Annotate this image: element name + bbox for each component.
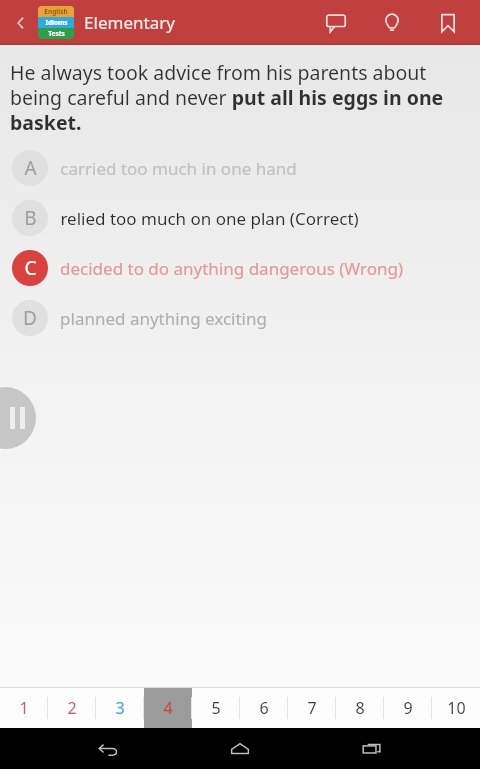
staticText: planned anything exciting — [60, 307, 267, 330]
staticText: B — [24, 205, 37, 231]
staticText: 7 — [307, 697, 317, 719]
button[interactable]: Pause — [0, 387, 36, 449]
staticText: D — [23, 305, 37, 331]
button[interactable]: 5 — [192, 688, 240, 728]
button[interactable]: 10 — [432, 688, 480, 728]
button[interactable]: Comments — [316, 3, 356, 43]
button[interactable]: A — [0, 143, 480, 193]
staticText: carried too much in one hand — [60, 157, 297, 180]
staticText: A — [24, 155, 37, 181]
button[interactable]: C — [0, 243, 480, 293]
staticText: 6 — [259, 697, 269, 719]
staticText: 5 — [211, 697, 221, 719]
staticText: relied too much on one plan (Correct) — [60, 207, 359, 230]
staticText: 3 — [115, 697, 125, 719]
staticText: He always took advice from his parents a… — [10, 59, 466, 135]
button[interactable]: Hint — [372, 3, 412, 43]
staticText: 10 — [447, 697, 466, 719]
staticText: Tests — [48, 29, 65, 38]
button[interactable]: 9 — [384, 688, 432, 728]
button[interactable]: 3 — [96, 688, 144, 728]
button[interactable]: D — [0, 293, 480, 343]
button[interactable]: Back — [4, 6, 38, 40]
button[interactable]: Bookmark — [428, 3, 468, 43]
button[interactable]: 6 — [240, 688, 288, 728]
button[interactable]: Recents — [348, 728, 396, 769]
button[interactable]: 4 — [144, 688, 192, 728]
staticText: English — [44, 7, 68, 16]
staticText: C — [24, 255, 37, 281]
staticText: 2 — [67, 697, 77, 719]
button[interactable]: 7 — [288, 688, 336, 728]
staticText: 9 — [403, 697, 413, 719]
staticText: 8 — [355, 697, 365, 719]
button[interactable]: 8 — [336, 688, 384, 728]
button[interactable]: Back — [84, 728, 132, 769]
staticText: Idioms — [45, 18, 68, 27]
staticText: 1 — [19, 697, 29, 719]
staticText: 4 — [163, 697, 173, 719]
staticText: Elementary — [84, 11, 175, 34]
staticText: decided to do anything dangerous (Wrong) — [60, 257, 403, 280]
button[interactable]: Home — [216, 728, 264, 769]
button[interactable]: English Idioms Tests — [38, 6, 74, 39]
button[interactable]: 2 — [48, 688, 96, 728]
button[interactable]: B — [0, 193, 480, 243]
button[interactable]: 1 — [0, 688, 48, 728]
